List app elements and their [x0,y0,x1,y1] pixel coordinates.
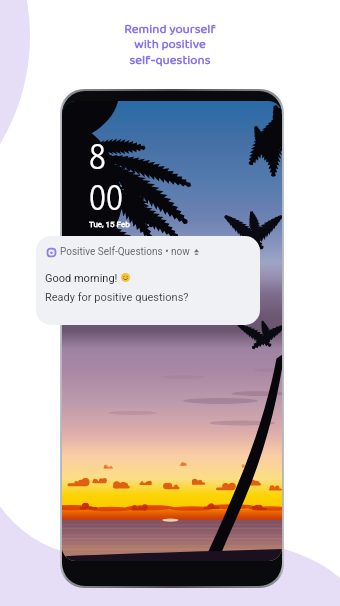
staticText: Good morning! [45,272,118,285]
button[interactable]: Positive Self-Questions • now [36,236,260,325]
staticText: Remind yourself with positive self-quest… [0,19,340,71]
staticText: Tue, 15 Feb [89,220,130,229]
staticText: 00 [89,176,123,217]
staticText: 8 [89,135,106,176]
staticText: Ready for positive questions? [45,291,189,304]
staticText: Positive Self-Questions • now [60,246,190,258]
